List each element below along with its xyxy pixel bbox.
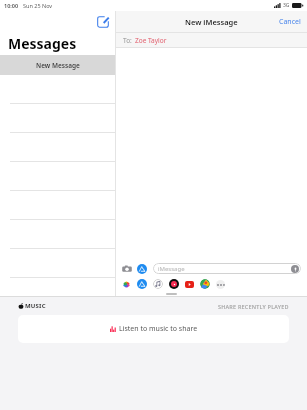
- button[interactable]: New Message: [0, 55, 115, 75]
- staticText: Cancel: [279, 17, 301, 27]
- staticText: MUSIC: [25, 302, 46, 310]
- button[interactable]: More apps: [216, 280, 225, 289]
- staticText: SHARE RECENTLY PLAYED: [218, 303, 289, 310]
- button[interactable]: [0, 249, 115, 278]
- button[interactable]: App Store: [137, 264, 147, 274]
- button[interactable]: Apple Music: [169, 279, 179, 289]
- button[interactable]: [0, 75, 115, 104]
- staticText: New iMessage: [185, 17, 238, 27]
- staticText: Listen to music to share: [119, 324, 198, 334]
- button[interactable]: App Store: [137, 279, 147, 289]
- button[interactable]: [0, 191, 115, 220]
- staticText: To:: [123, 36, 132, 45]
- button[interactable]: Music: [153, 279, 163, 289]
- button[interactable]: iMessage: [153, 263, 301, 274]
- staticText: Zoe Taylor: [135, 36, 167, 45]
- staticText: Sun 25 Nov: [23, 2, 53, 9]
- button[interactable]: SHARE RECENTLY PLAYED: [218, 303, 289, 310]
- staticText: iMessage: [158, 265, 185, 273]
- button[interactable]: Listen to music to share: [18, 315, 289, 343]
- staticText: New Message: [36, 61, 80, 70]
- button[interactable]: Maps: [200, 279, 210, 289]
- button[interactable]: New message: [96, 15, 110, 29]
- staticText: 3G: [283, 2, 290, 9]
- button[interactable]: Photos: [122, 280, 131, 289]
- button[interactable]: To:: [116, 33, 307, 47]
- button[interactable]: YouTube: [185, 281, 194, 288]
- button[interactable]: [0, 162, 115, 191]
- button[interactable]: [0, 133, 115, 162]
- staticText: 10:00: [4, 2, 19, 9]
- button[interactable]: [0, 220, 115, 249]
- staticText: Messages: [8, 34, 77, 53]
- button[interactable]: [0, 104, 115, 133]
- button[interactable]: Camera: [122, 264, 132, 274]
- button[interactable]: Cancel: [279, 17, 301, 27]
